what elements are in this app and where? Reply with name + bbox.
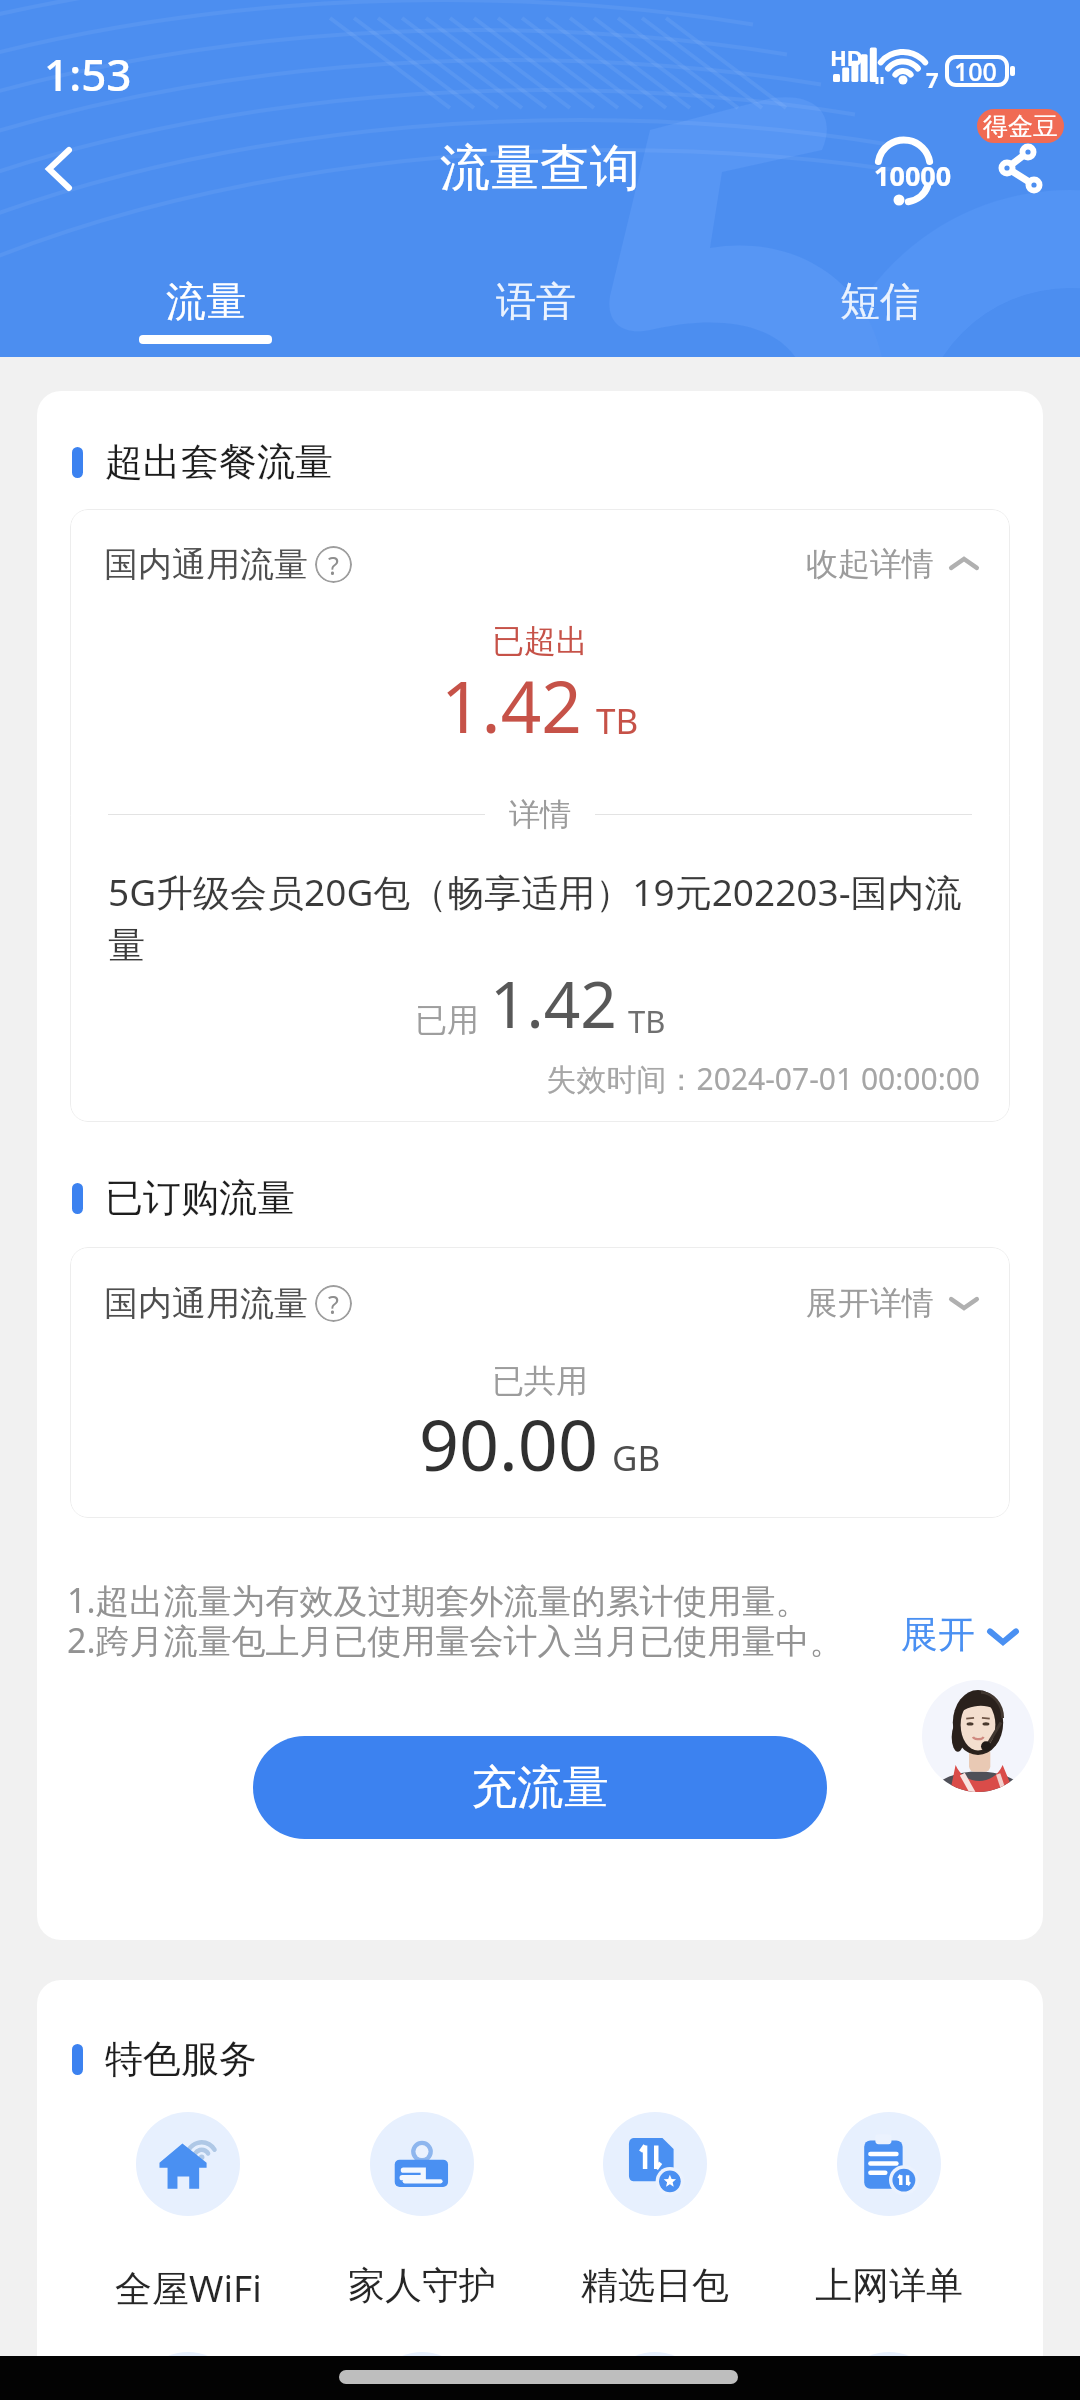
staticText: 1.42 [441,657,582,754]
button[interactable]: 精选日包 [555,2112,755,2309]
staticText: 2.跨月流量包上月已使用量会计入当月已使用量中。 [67,1617,844,1663]
button[interactable]: 家人守护 [322,2112,522,2309]
staticText: 100 [954,54,997,88]
staticText: 1:53 [44,44,132,104]
staticText: 已用 [415,1000,479,1040]
staticText: 短信 [840,276,920,326]
staticText: ? [328,1287,339,1321]
staticText: 收起详情 [806,544,934,584]
button[interactable]: 语音 [426,276,646,356]
button[interactable]: Customer service 10000 [861,129,945,213]
staticText: 流量查询 [440,137,640,200]
staticText: 7 [926,64,939,94]
staticText: TB [596,697,639,745]
staticText: 超出套餐流量 [105,438,333,486]
staticText: GB [612,1434,661,1482]
staticText: 流量 [166,276,246,326]
button[interactable]: Help [315,1285,352,1322]
staticText: 精选日包 [581,2262,729,2309]
staticText: 国内通用流量 [104,1282,308,1325]
staticText: 已订购流量 [105,1174,295,1222]
staticText: HD [830,42,863,72]
staticText: 详情 [509,795,571,834]
button[interactable]: 展开详情 [806,1283,980,1323]
staticText: 1.超出流量为有效及过期套外流量的累计使用量。 [67,1577,810,1623]
staticText: 失效时间：2024-07-01 00:00:00 [70,1058,980,1099]
button[interactable]: Back [21,131,97,207]
staticText: 10000 [874,157,952,194]
staticText: 特色服务 [105,2035,257,2083]
staticText: 国内通用流量 [104,543,308,586]
button[interactable]: 收起详情 [806,544,980,584]
staticText: 展开详情 [806,1283,934,1323]
staticText: 全屋WiFi [115,2262,262,2313]
staticText: TB [628,1000,666,1042]
staticText: 语音 [496,276,576,326]
button[interactable]: Customer service [922,1680,1034,1792]
staticText: 展开 [901,1611,975,1658]
staticText: ? [328,548,339,582]
staticText: 已超出 [70,621,1010,661]
staticText: 90.00 [419,1396,598,1491]
button[interactable]: 流量 [95,276,315,356]
staticText: 家人守护 [348,2262,496,2309]
staticText: 上网详单 [815,2262,963,2309]
button[interactable]: 全屋WiFi [88,2112,288,2313]
staticText: 1.42 [490,960,617,1047]
button[interactable]: 充流量 [253,1736,827,1839]
button[interactable]: 上网详单 [789,2112,989,2309]
button[interactable]: 展开 [901,1611,1021,1658]
staticText: 5G升级会员20G包（畅享适用）19元202203-国内流量 [108,866,998,969]
button[interactable]: Help [315,546,352,583]
button[interactable]: 得金豆 [977,109,1064,143]
button[interactable]: Share [980,134,1056,210]
button[interactable]: 短信 [770,276,990,356]
staticText: 得金豆 [983,111,1058,142]
staticText: 充流量 [471,1759,609,1817]
staticText: 已共用 [70,1361,1010,1401]
